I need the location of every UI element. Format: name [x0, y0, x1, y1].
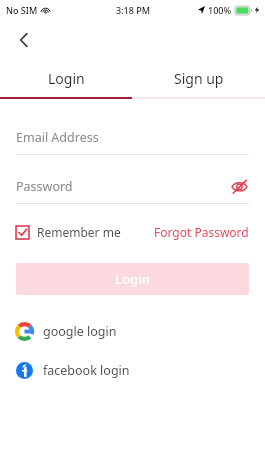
button[interactable]: Login — [0, 60, 132, 97]
staticText: Password — [16, 178, 229, 195]
staticText: Login — [115, 270, 150, 288]
button[interactable]: Login — [16, 263, 249, 295]
staticText: Sign up — [174, 69, 224, 88]
button[interactable]: Forgot Password — [154, 224, 249, 240]
button[interactable]: Show password — [229, 176, 249, 196]
button[interactable]: Password — [16, 175, 249, 204]
staticText: facebook login — [43, 362, 130, 379]
button[interactable]: Back — [10, 26, 38, 54]
staticText: Remember me — [37, 224, 121, 240]
staticText: No SIM — [6, 4, 38, 16]
button[interactable]: Sign up — [132, 60, 265, 97]
staticText: 3:18 PM — [116, 4, 150, 16]
button[interactable]: Remember me — [16, 224, 121, 240]
button[interactable]: Email Address — [16, 126, 249, 155]
button[interactable]: google login — [16, 316, 249, 346]
staticText: Forgot Password — [154, 224, 249, 240]
staticText: Login — [48, 69, 85, 88]
button[interactable]: facebook login — [16, 355, 249, 385]
staticText: google login — [43, 323, 117, 340]
staticText: Email Address — [16, 129, 249, 146]
staticText: 100% — [208, 4, 232, 16]
